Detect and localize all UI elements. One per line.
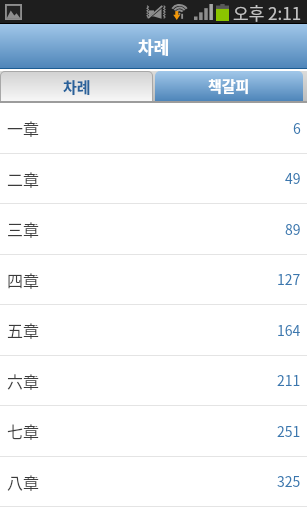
staticText: 四章 — [7, 268, 40, 291]
staticText: 49 — [285, 168, 301, 188]
staticText: 89 — [285, 219, 301, 239]
button[interactable]: 八章 — [0, 457, 307, 507]
button[interactable]: 三章 — [0, 204, 307, 255]
staticText: 325 — [277, 471, 301, 491]
staticText: 一章 — [7, 116, 40, 139]
staticText: 八章 — [7, 470, 40, 493]
staticText: 책갈피 — [208, 75, 250, 97]
button[interactable]: 四章 — [0, 255, 307, 305]
staticText: 164 — [277, 320, 301, 340]
staticText: 차례 — [63, 76, 91, 98]
staticText: 211 — [277, 370, 301, 390]
staticText: 五章 — [7, 318, 40, 341]
staticText: 차례 — [138, 34, 170, 59]
staticText: 오후 2:11 — [233, 0, 302, 24]
staticText: 6 — [293, 118, 301, 138]
button[interactable]: 一章 — [0, 103, 307, 154]
staticText: 七章 — [7, 419, 40, 442]
staticText: 二章 — [7, 167, 40, 190]
staticText: 三章 — [7, 217, 40, 240]
button[interactable]: 六章 — [0, 356, 307, 406]
staticText: 251 — [277, 421, 301, 441]
staticText: 六章 — [7, 369, 40, 392]
button[interactable]: 七章 — [0, 406, 307, 457]
button[interactable]: 차례 — [1, 72, 152, 101]
staticText: 127 — [277, 269, 301, 289]
button[interactable]: 책갈피 — [155, 71, 303, 101]
button[interactable]: 五章 — [0, 305, 307, 356]
button[interactable]: 二章 — [0, 154, 307, 204]
